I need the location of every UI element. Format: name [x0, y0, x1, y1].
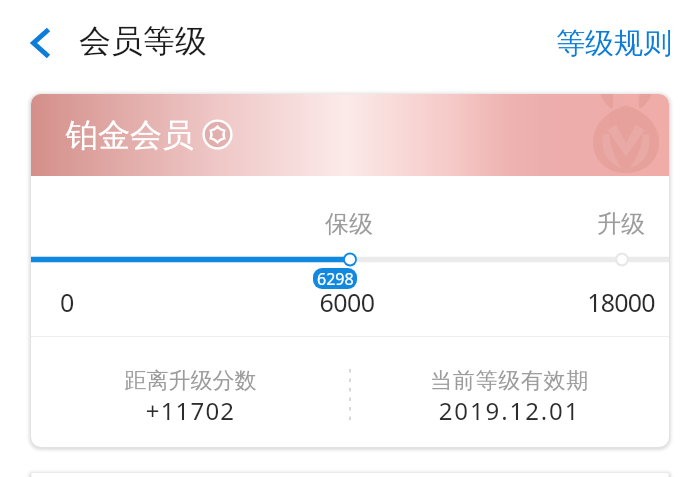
button[interactable] — [31, 337, 350, 447]
staticText: 等级规则 — [556, 25, 672, 62]
button[interactable]: 等级规则 — [540, 13, 700, 70]
button[interactable]: Back — [16, 18, 62, 64]
button[interactable]: 铂金会员 — [31, 94, 669, 447]
staticText: 18000 — [570, 285, 669, 319]
staticText: 当前等级有效期 — [350, 367, 669, 395]
staticText: 6000 — [296, 285, 398, 319]
staticText: 升级 — [594, 209, 648, 239]
staticText: 距离升级分数 — [31, 367, 350, 395]
staticText: 保级 — [322, 209, 376, 239]
staticText: 0 — [60, 285, 75, 319]
staticText: 会员等级 — [79, 21, 207, 61]
staticText: 2019.12.01 — [350, 394, 669, 427]
button[interactable] — [350, 337, 669, 447]
staticText: 铂金会员 — [66, 115, 194, 155]
staticText: 6298 — [317, 268, 354, 289]
staticText: +11702 — [31, 394, 350, 427]
